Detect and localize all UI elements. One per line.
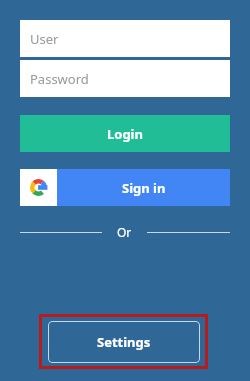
staticText: Login — [107, 125, 143, 143]
button[interactable]: Login — [20, 115, 230, 152]
button[interactable]: User — [20, 20, 230, 57]
staticText: Settings — [97, 333, 151, 351]
staticText: User — [30, 30, 59, 48]
button[interactable]: Google — [20, 169, 230, 206]
button[interactable]: Settings — [48, 321, 200, 363]
staticText: Sign in — [122, 179, 166, 197]
button[interactable]: Password — [20, 60, 230, 97]
staticText: Password — [30, 70, 89, 88]
staticText: Or — [117, 224, 132, 240]
other: Google — [30, 179, 47, 196]
